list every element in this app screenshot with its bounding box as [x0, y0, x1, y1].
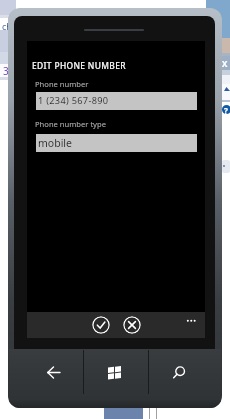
staticText: mobile: [38, 136, 72, 150]
button[interactable]: Start: [84, 349, 148, 396]
button[interactable]: More options: [180, 312, 205, 326]
button[interactable]: Accept: [92, 316, 110, 334]
staticText: X: [222, 58, 228, 69]
staticText: 1 (234) 567-890: [38, 94, 109, 107]
staticText: ?: [224, 105, 228, 116]
staticText: EDIT PHONE NUMBER: [32, 60, 126, 71]
staticText: 3: [3, 64, 9, 78]
button[interactable]: 1 (234) 567-890: [36, 92, 197, 110]
button[interactable]: Back: [9, 349, 83, 396]
button[interactable]: Search: [149, 349, 221, 396]
staticText: Phone number: [35, 79, 89, 89]
staticText: ch: [2, 20, 12, 32]
staticText: Phone number type: [35, 119, 106, 129]
button[interactable]: mobile: [36, 134, 197, 152]
button[interactable]: Cancel: [123, 316, 141, 334]
